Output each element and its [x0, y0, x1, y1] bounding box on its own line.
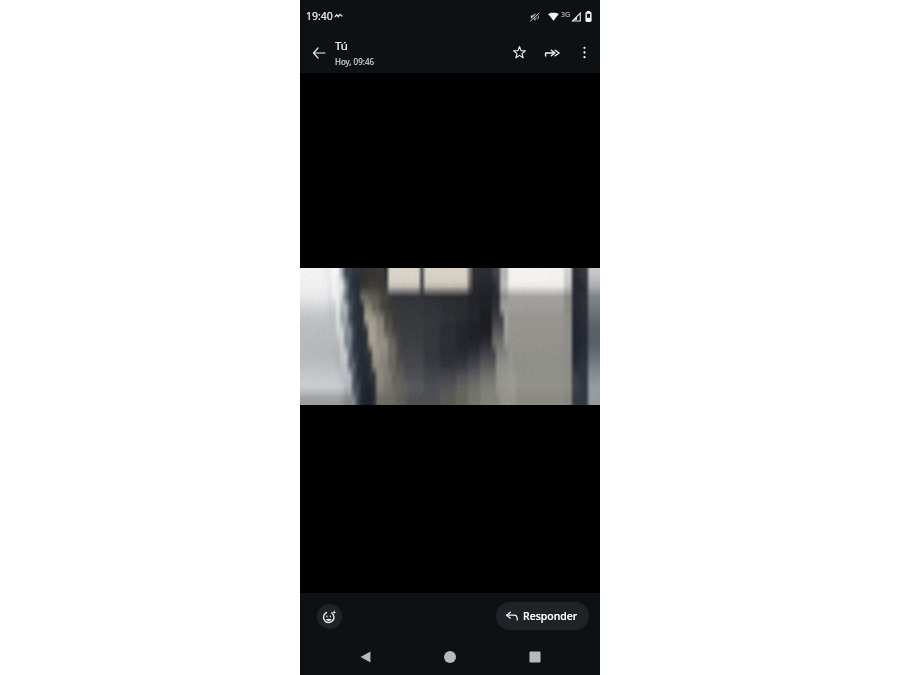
button[interactable]: Forward	[537, 37, 568, 68]
staticText: Responder	[523, 609, 578, 623]
button[interactable]: Back	[305, 39, 332, 66]
button[interactable]: Responder	[496, 602, 589, 630]
button[interactable]: Recents	[515, 639, 555, 675]
staticText: Hoy, 09:46	[335, 56, 375, 67]
staticText: 3G	[561, 10, 571, 20]
staticText: Tú	[335, 38, 348, 54]
button[interactable]: Add reaction	[317, 604, 342, 629]
button[interactable]: Home	[430, 639, 470, 675]
staticText: 19:40	[306, 9, 333, 23]
button[interactable]: More options	[570, 38, 599, 67]
button[interactable]: Back	[345, 639, 385, 675]
button[interactable]: Star	[504, 37, 535, 68]
